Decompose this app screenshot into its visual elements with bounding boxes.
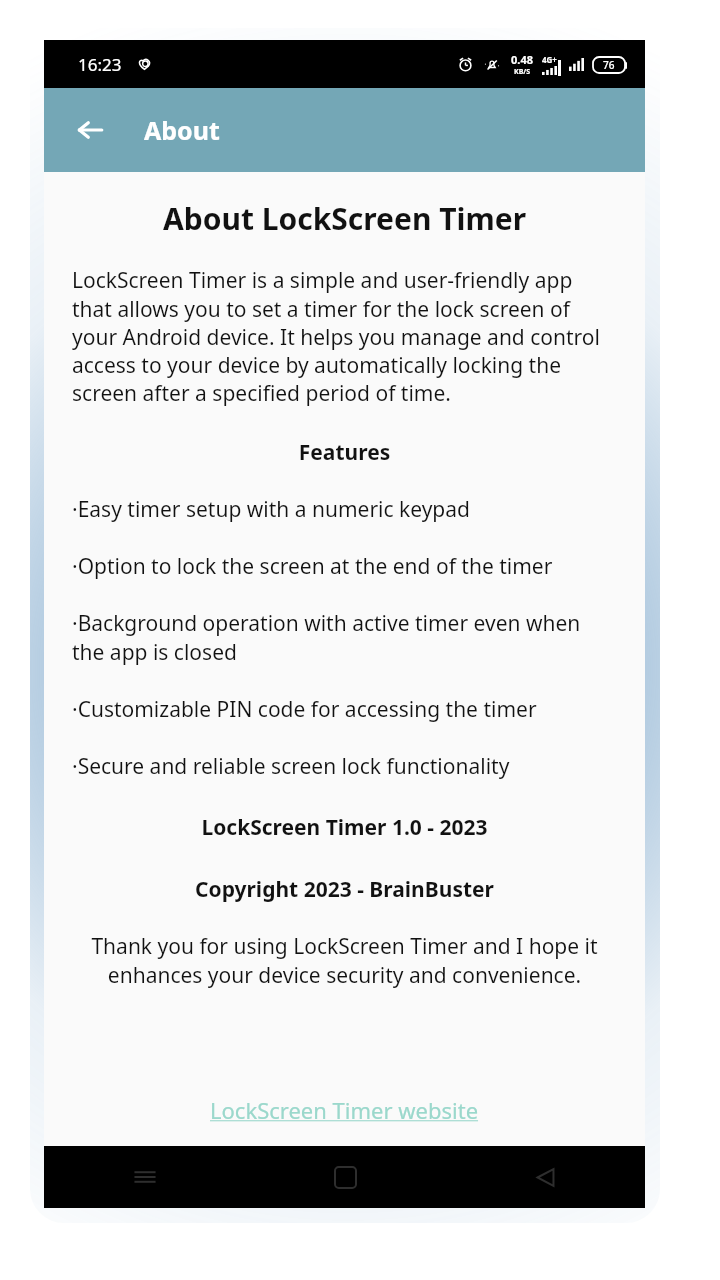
staticText: Thank you for using LockScreen Timer and… <box>72 932 617 990</box>
staticText: About LockScreen Timer <box>72 198 617 239</box>
staticText: ·Option to lock the screen at the end of… <box>72 552 553 581</box>
staticText: Features <box>72 438 617 467</box>
staticText: 16:23 <box>78 53 122 76</box>
staticText: 0.48 <box>511 52 533 67</box>
staticText: ·Background operation with active timer … <box>72 609 617 667</box>
staticText: ·Secure and reliable screen lock functio… <box>72 752 510 781</box>
button[interactable]: LockScreen Timer website <box>198 1087 491 1133</box>
staticText: LockScreen Timer website <box>210 1095 479 1125</box>
staticText: 76 <box>603 58 615 72</box>
button[interactable]: Back <box>445 1146 645 1208</box>
staticText: LockScreen Timer 1.0 - 2023 <box>72 813 617 842</box>
button[interactable]: Back <box>64 104 116 156</box>
staticText: KB/S <box>514 67 531 77</box>
staticText: 4G+ <box>542 54 557 65</box>
staticText: About <box>144 113 220 147</box>
staticText: ·Customizable PIN code for accessing the… <box>72 695 537 724</box>
button[interactable]: Recents <box>44 1146 245 1208</box>
button[interactable]: Home <box>245 1146 445 1208</box>
staticText: Copyright 2023 - BrainBuster <box>72 875 617 904</box>
staticText: ·Easy timer setup with a numeric keypad <box>72 495 470 524</box>
staticText: LockScreen Timer is a simple and user-fr… <box>72 266 617 408</box>
